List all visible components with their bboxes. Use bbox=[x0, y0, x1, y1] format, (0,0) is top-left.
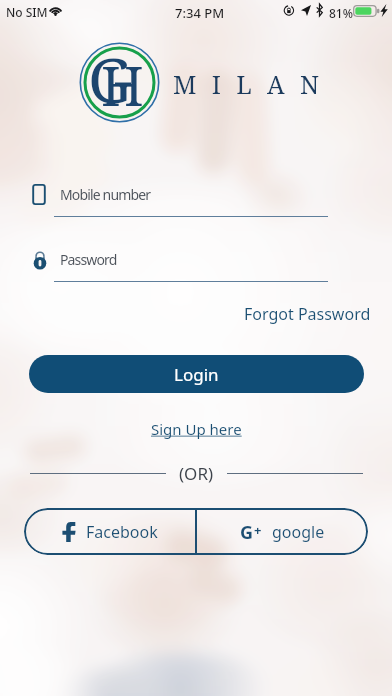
staticText: Mobile number bbox=[60, 185, 151, 204]
staticText: 7:34 PM bbox=[175, 4, 225, 22]
button[interactable]: Login bbox=[29, 355, 364, 393]
staticText: No SIM bbox=[6, 4, 48, 20]
staticText: M I L A N bbox=[173, 67, 324, 101]
staticText: + bbox=[254, 521, 262, 539]
button[interactable]: Sign Up here bbox=[151, 419, 242, 439]
staticText: G bbox=[240, 520, 254, 545]
staticText: G bbox=[88, 37, 133, 118]
staticText: Facebook bbox=[86, 521, 158, 543]
button[interactable]: Facebook bbox=[24, 508, 195, 555]
staticText: google bbox=[272, 521, 325, 543]
staticText: Password bbox=[60, 250, 117, 269]
staticText: Forgot Password bbox=[244, 303, 371, 325]
button[interactable]: Forgot Password bbox=[244, 303, 371, 325]
staticText: 81% bbox=[329, 5, 353, 21]
staticText: H bbox=[101, 48, 144, 122]
button[interactable]: G bbox=[197, 508, 368, 555]
staticText: (OR) bbox=[179, 462, 214, 484]
staticText: Login bbox=[174, 363, 219, 386]
